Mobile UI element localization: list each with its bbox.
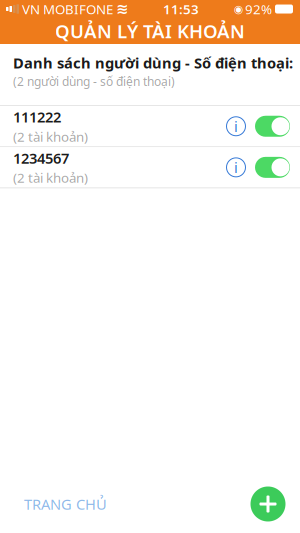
staticText: 11:53 bbox=[163, 0, 199, 18]
staticText: 1234567 bbox=[13, 148, 69, 168]
button[interactable]: 1234567 bbox=[0, 147, 300, 188]
staticText: ◉ bbox=[234, 3, 243, 15]
staticText: ≋ bbox=[116, 1, 128, 17]
staticText: (2 tài khoản) bbox=[13, 128, 88, 145]
staticText: (2 người dùng - số điện thoại) bbox=[13, 73, 175, 89]
staticText: VN MOBIFONE bbox=[22, 0, 113, 18]
button[interactable]: Add bbox=[246, 482, 290, 526]
button[interactable]: 111222 bbox=[0, 106, 300, 146]
staticText: QUẢN LÝ TÀI KHOẢN bbox=[55, 19, 245, 43]
staticText: Danh sách người dùng - Số điện thoại: bbox=[13, 53, 293, 72]
staticText: 92% bbox=[245, 0, 272, 18]
button[interactable]: TRANG CHỦ bbox=[0, 486, 107, 522]
staticText: i bbox=[234, 116, 238, 136]
staticText: (2 tài khoản) bbox=[13, 169, 88, 186]
staticText: TRANG CHỦ bbox=[24, 494, 107, 514]
staticText: i bbox=[234, 158, 238, 177]
staticText: 111222 bbox=[13, 107, 61, 127]
